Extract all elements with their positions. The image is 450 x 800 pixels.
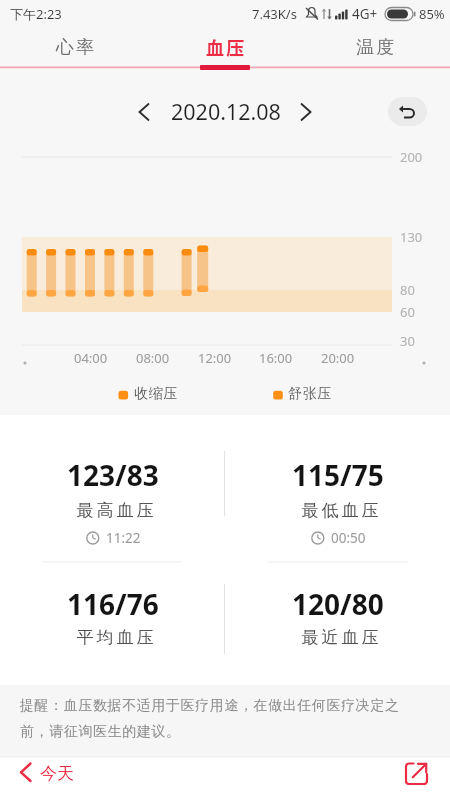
staticText: 2020.12.08 [171, 97, 281, 126]
staticText: 7.43K/s [252, 5, 297, 23]
button[interactable] [300, 30, 450, 66]
staticText: 08:00 [136, 349, 170, 367]
button[interactable] [14, 758, 94, 796]
staticText: 今天 [40, 763, 74, 784]
button[interactable] [388, 97, 427, 126]
staticText: 00:50 [331, 529, 366, 547]
staticText: 123/83 [67, 456, 159, 494]
staticText: 20:00 [321, 349, 355, 367]
staticText: 4G+ [352, 5, 378, 23]
staticText: 116/76 [67, 585, 159, 623]
staticText: 80 [400, 281, 415, 299]
staticText: 心率 [56, 36, 97, 59]
staticText: 60 [400, 303, 415, 321]
button[interactable] [0, 30, 150, 66]
staticText: 提醒：血压数据不适用于医疗用途，在做出任何医疗决定之 [20, 697, 400, 715]
staticText: 30 [400, 332, 415, 350]
staticText: 85% [419, 5, 445, 23]
staticText: 平均血压 [75, 627, 155, 648]
staticText: 舒张压 [288, 385, 333, 403]
staticText: 120/80 [292, 585, 384, 623]
staticText: 最高血压 [75, 500, 155, 521]
staticText: 下午2:23 [10, 5, 62, 23]
staticText: 前，请征询医生的建议。 [20, 723, 181, 741]
staticText: 血压 [206, 34, 247, 60]
staticText: 11:22 [106, 529, 141, 547]
button[interactable] [290, 97, 322, 127]
staticText: 收缩压 [134, 385, 179, 403]
staticText: 130 [400, 228, 423, 246]
staticText: 最近血压 [300, 627, 380, 648]
staticText: 200 [400, 148, 423, 166]
staticText: 12:00 [198, 349, 232, 367]
button[interactable] [398, 757, 436, 795]
staticText: 16:00 [259, 349, 293, 367]
button[interactable] [150, 30, 300, 66]
button[interactable] [128, 97, 160, 127]
staticText: 最低血压 [300, 500, 380, 521]
staticText: 温度 [356, 36, 397, 59]
staticText: 115/75 [292, 456, 384, 494]
staticText: 04:00 [74, 349, 108, 367]
